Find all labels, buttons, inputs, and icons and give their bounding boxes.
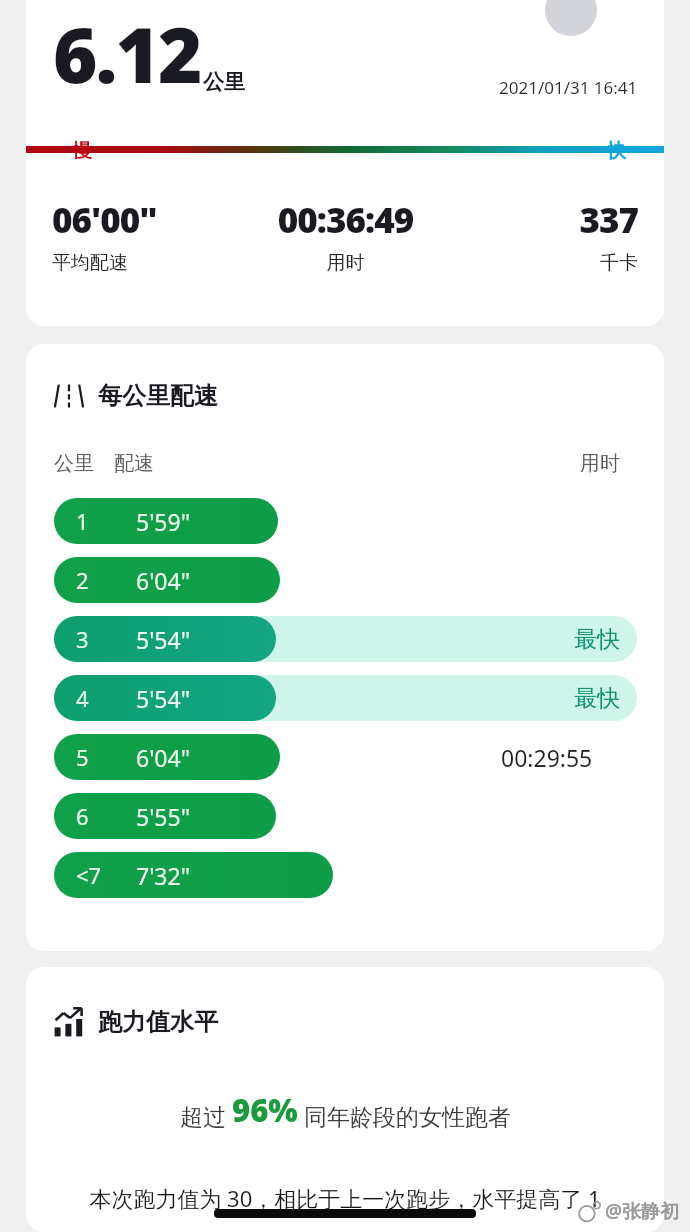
staticText: 5'54" (136, 624, 191, 655)
staticText: 超过 (180, 1100, 232, 1131)
button[interactable]: 1 (26, 498, 664, 544)
staticText: 3 (76, 624, 89, 654)
staticText: 最快 (574, 625, 620, 654)
staticText: 慢 (73, 139, 92, 163)
staticText: 公里 (54, 451, 94, 476)
button[interactable]: 2 (26, 557, 664, 603)
staticText: <7 (76, 860, 102, 890)
staticText: 6.12 (53, 2, 201, 106)
staticText: 跑力值水平 (98, 1007, 218, 1037)
staticText: 00:29:55 (501, 742, 593, 773)
button[interactable]: <7 (26, 852, 664, 898)
staticText: 5'55" (136, 801, 191, 832)
button[interactable]: Road (26, 344, 664, 951)
staticText: 千卡 (443, 251, 638, 275)
staticText: 同年龄段的女性跑者 (298, 1100, 511, 1131)
staticText: 1 (76, 506, 89, 536)
staticText: 本次跑力值为 30，相比于上一次跑步，水平提高了 1 (52, 1183, 638, 1213)
button[interactable]: 5 (26, 734, 664, 780)
staticText: 用时 (248, 251, 443, 275)
staticText: 337 (443, 196, 638, 244)
staticText: 6 (76, 801, 89, 831)
staticText: 最快 (574, 684, 620, 713)
button[interactable]: 6.12 (26, 0, 664, 326)
staticText: 公里 (203, 69, 245, 95)
button[interactable]: 4 (26, 675, 664, 721)
button[interactable]: 3 (26, 616, 664, 662)
staticText: 5'54" (136, 683, 191, 714)
button[interactable]: Chart (26, 967, 664, 1232)
staticText: 每公里配速 (98, 381, 218, 411)
other: Road (54, 381, 84, 411)
staticText: 5'59" (136, 506, 191, 537)
staticText: 6'04" (136, 565, 191, 596)
other: Chart (54, 1007, 84, 1037)
staticText: 00:36:49 (248, 196, 443, 244)
staticText: 06'00" (52, 196, 248, 244)
staticText: 平均配速 (52, 251, 248, 275)
staticText: 2 (76, 565, 89, 595)
staticText: 7'32" (136, 860, 191, 891)
staticText: 4 (76, 683, 89, 713)
staticText: 5 (76, 742, 89, 772)
staticText: 用时 (580, 451, 620, 476)
staticText: 配速 (114, 451, 154, 476)
staticText: 6'04" (136, 742, 191, 773)
staticText: @张静初 (605, 1198, 680, 1224)
staticText: 快 (607, 139, 626, 163)
staticText: 2021/01/31 16:41 (499, 76, 638, 99)
staticText: 96% (232, 1089, 298, 1131)
button[interactable]: 6 (26, 793, 664, 839)
